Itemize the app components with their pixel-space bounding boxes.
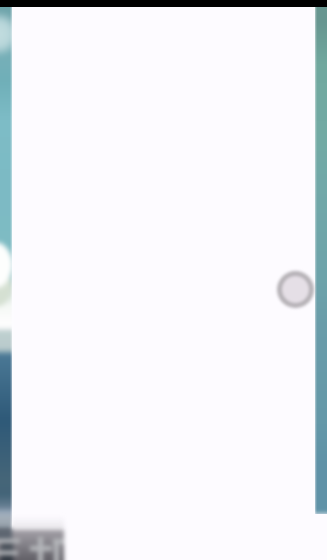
button[interactable]: Handle: [282, 276, 309, 303]
